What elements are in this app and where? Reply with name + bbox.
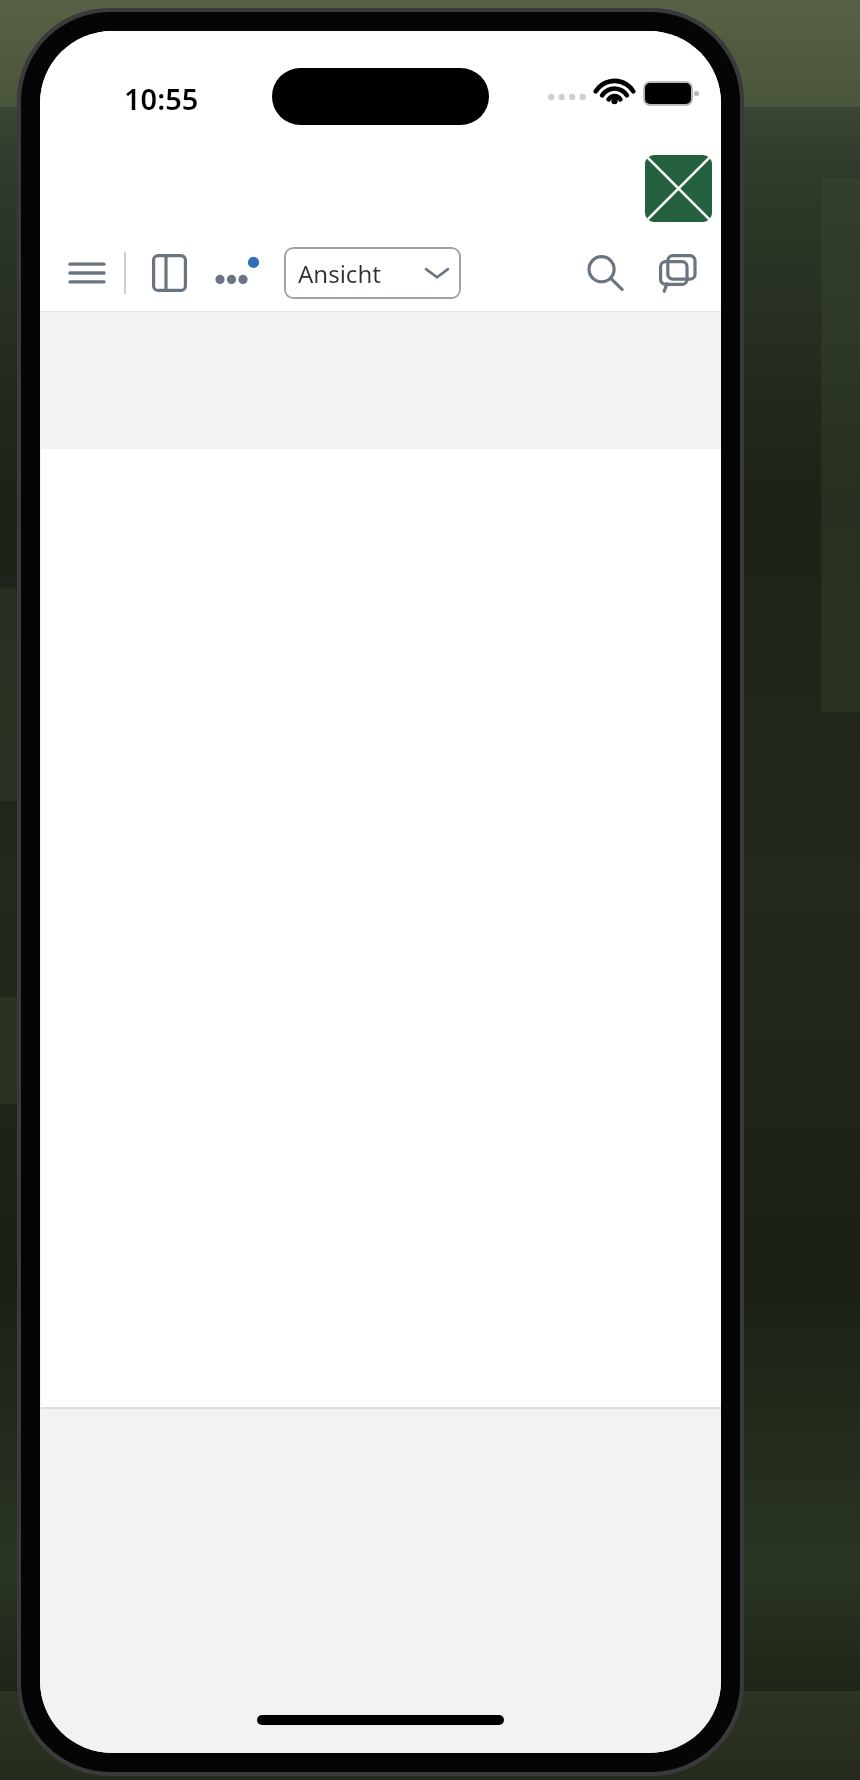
button[interactable]: Toggle side panel	[140, 244, 198, 302]
button[interactable]: More options	[208, 244, 266, 302]
staticText: 10:55	[124, 79, 199, 118]
button[interactable]: Close image placeholder	[645, 155, 712, 222]
staticText: Ansicht	[298, 257, 381, 290]
button[interactable]: Ansicht	[284, 247, 461, 299]
button[interactable]: Menu	[58, 244, 116, 302]
button[interactable]: Comments	[649, 243, 709, 303]
button[interactable]: Search	[575, 243, 635, 303]
